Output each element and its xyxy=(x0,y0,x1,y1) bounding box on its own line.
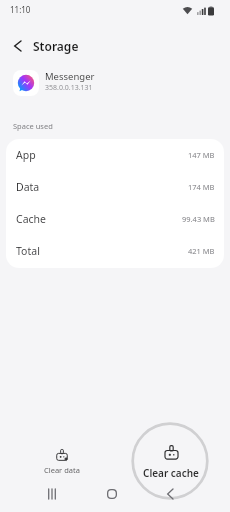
staticText: 421 MB xyxy=(188,246,215,256)
staticText: 174 MB xyxy=(188,182,215,192)
staticText: Space used xyxy=(13,121,53,131)
staticText: Clear cache xyxy=(143,466,199,480)
button[interactable] xyxy=(101,483,123,505)
button[interactable]: Clear cache xyxy=(138,444,204,480)
staticText: 11:10 xyxy=(10,4,31,15)
staticText: 358.0.0.13.131 xyxy=(45,83,93,93)
staticText: 147 MB xyxy=(188,150,215,160)
button[interactable] xyxy=(159,483,181,505)
button[interactable]: Clear data xyxy=(30,448,94,475)
button[interactable] xyxy=(41,483,63,505)
staticText: App xyxy=(16,148,36,162)
staticText: Clear data xyxy=(44,465,80,475)
staticText: Storage xyxy=(33,38,79,54)
staticText: Messenger xyxy=(45,70,95,83)
button[interactable] xyxy=(9,38,25,54)
staticText: 99.43 MB xyxy=(182,214,215,224)
staticText: Total xyxy=(16,244,40,258)
staticText: Data xyxy=(16,180,40,194)
staticText: Cache xyxy=(16,212,46,226)
